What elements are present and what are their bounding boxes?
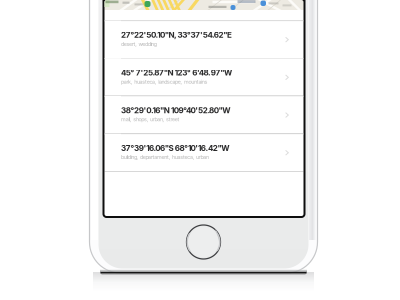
staticText: mall, shops, urban, street	[121, 116, 179, 123]
staticText: 37°39'16.06"S 68°10'16.42"W	[121, 143, 229, 153]
staticText: 27°22'50.10"N, 33°37'54.62"E	[121, 30, 232, 40]
button[interactable]: 27°22'50.10"N, 33°37'54.62"E	[104, 20, 303, 58]
button[interactable]: 37°39'16.06"S 68°10'16.42"W	[104, 133, 303, 171]
staticText: 38°29'0.16"N 109°40'52.80"W	[121, 105, 230, 115]
button[interactable]: Home	[0, 0, 400, 300]
staticText: park, huasteca, landscape, mountains	[121, 78, 207, 85]
button[interactable]: 45° 7'25.87"N 123° 6'48.97"W	[104, 58, 303, 96]
button[interactable]: 38°29'0.16"N 109°40'52.80"W	[104, 96, 303, 133]
staticText: building, departament, huasteca, urban	[121, 154, 209, 160]
staticText: 45° 7'25.87"N 123° 6'48.97"W	[121, 68, 232, 77]
staticText: desert, wedding	[121, 41, 157, 47]
